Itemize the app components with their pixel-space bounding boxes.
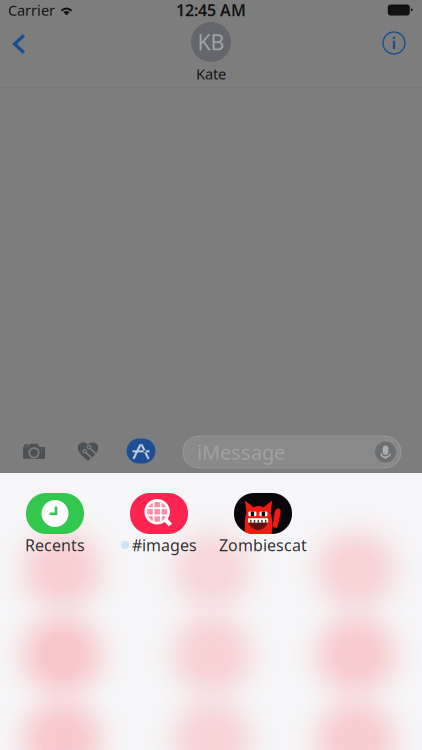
button[interactable]: #images [107, 493, 211, 563]
staticText: Recents [25, 534, 85, 556]
button[interactable]: Recents [3, 493, 107, 563]
button[interactable]: Camera [8, 429, 60, 473]
staticText: iMessage [197, 439, 285, 465]
button[interactable]: Digital Touch [62, 429, 114, 473]
staticText: KB [197, 28, 224, 56]
staticText: 12:45 AM [176, 0, 246, 21]
staticText: Kate [196, 64, 226, 83]
staticText: Zombiescat [219, 534, 307, 556]
button[interactable]: Back [0, 27, 41, 61]
button[interactable]: Apps [115, 429, 167, 473]
button[interactable]: iMessage [183, 436, 401, 468]
staticText: #images [132, 534, 197, 556]
button[interactable]: Zombiescat [211, 493, 315, 563]
staticText: Carrier [8, 0, 55, 20]
button[interactable]: Details [372, 26, 416, 60]
